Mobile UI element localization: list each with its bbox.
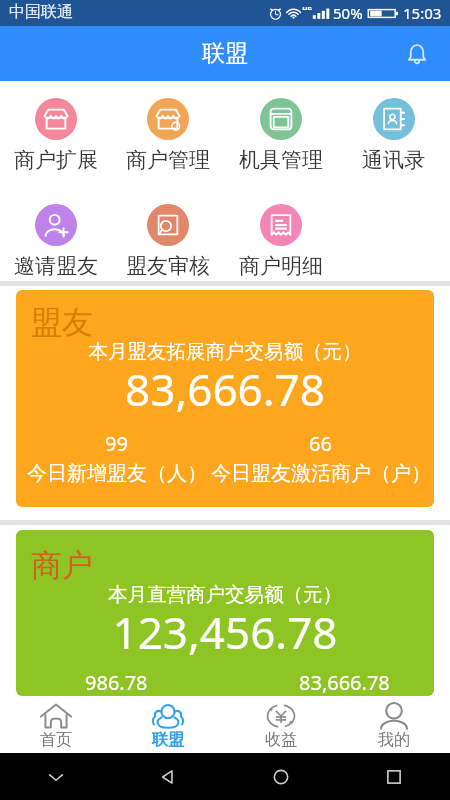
button[interactable]: 商户管理 — [112, 98, 224, 173]
button[interactable]: 机具管理 — [224, 98, 337, 173]
button[interactable]: 收益 — [224, 696, 337, 753]
button[interactable]: Notifications — [402, 39, 432, 69]
staticText: 今日新增盟友（人） — [27, 461, 207, 486]
button[interactable]: 商户 — [16, 530, 434, 696]
staticText: 通讯录 — [362, 147, 425, 173]
staticText: 机具管理 — [239, 147, 323, 173]
button[interactable]: Back — [112, 753, 224, 800]
staticText: 中国联通 — [9, 2, 73, 22]
staticText: 联盟 — [202, 39, 248, 68]
staticText: 本月盟友拓展商户交易额（元） — [16, 339, 434, 364]
staticText: 本月直营商户交易额（元） — [16, 582, 434, 607]
staticText: 商户扩展 — [14, 147, 98, 173]
staticText: 盟友 — [31, 303, 93, 342]
staticText: 商户明细 — [239, 253, 323, 279]
button[interactable]: Recents — [337, 753, 450, 800]
staticText: 收益 — [265, 730, 297, 750]
button[interactable]: 盟友审核 — [112, 204, 224, 279]
button[interactable]: 联盟 — [112, 696, 224, 753]
button[interactable]: 通讯录 — [337, 98, 450, 173]
staticText: 商户 — [31, 546, 93, 585]
staticText: 今日盟友激活商户（户） — [211, 461, 431, 486]
staticText: 123,456.78 — [16, 602, 434, 662]
button[interactable]: 首页 — [0, 696, 112, 753]
staticText: 商户管理 — [126, 147, 210, 173]
button[interactable]: Home — [224, 753, 337, 800]
staticText: 联盟 — [152, 730, 184, 750]
staticText: 83,666.78 — [16, 359, 434, 419]
button[interactable]: 商户明细 — [224, 204, 337, 279]
staticText: 首页 — [40, 730, 72, 750]
staticText: 15:03 — [403, 3, 442, 23]
button[interactable]: 邀请盟友 — [0, 204, 112, 279]
staticText: 盟友审核 — [126, 253, 210, 279]
button[interactable]: 盟友 — [16, 290, 434, 507]
staticText: 50% — [333, 3, 363, 23]
staticText: 986.78 — [85, 669, 148, 696]
button[interactable]: 我的 — [337, 696, 450, 753]
staticText: 83,666.78 — [299, 669, 390, 696]
button[interactable]: Hide keyboard — [0, 753, 112, 800]
staticText: 邀请盟友 — [14, 253, 98, 279]
staticText: 66 — [309, 430, 332, 457]
staticText: 99 — [105, 430, 128, 457]
button[interactable]: 商户扩展 — [0, 98, 112, 173]
staticText: 我的 — [378, 730, 410, 750]
